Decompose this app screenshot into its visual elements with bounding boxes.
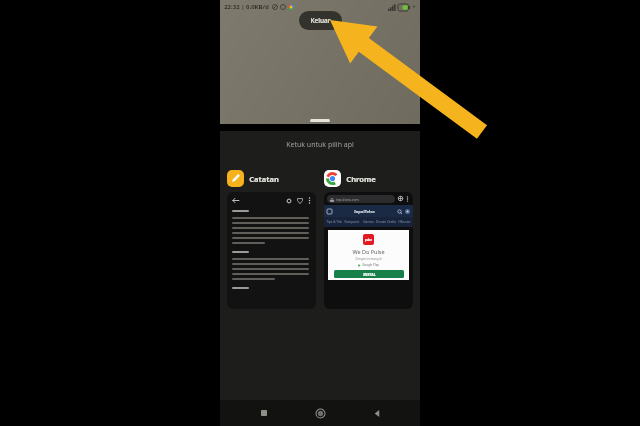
staticText: 22:32 | 0,0KB/d bbox=[224, 3, 269, 11]
staticText: Ketuk untuk pilih apl bbox=[286, 140, 354, 150]
staticText: INSTAL bbox=[363, 272, 376, 277]
staticText: Dengan memang di bbox=[355, 257, 382, 261]
staticText: + bbox=[412, 3, 416, 11]
staticText: Chrome bbox=[346, 174, 376, 184]
staticText: InpulTelco bbox=[354, 209, 375, 214]
staticText: We Do Pulse bbox=[352, 248, 385, 255]
button[interactable]: Chrome bbox=[324, 170, 413, 309]
staticText: pulse bbox=[365, 238, 372, 242]
staticText: Catatan bbox=[249, 174, 279, 184]
button[interactable]: Keluar bbox=[299, 11, 342, 30]
staticText: Keluar bbox=[310, 16, 331, 25]
button[interactable]: Catatan bbox=[227, 170, 316, 309]
staticText: Hiburan bbox=[398, 220, 411, 224]
button[interactable]: INSTAL bbox=[334, 270, 404, 278]
staticText: Tips & Trik bbox=[326, 220, 342, 224]
staticText: inpulsina.com bbox=[336, 197, 359, 202]
staticText: Games bbox=[363, 220, 374, 224]
staticText: Komputer bbox=[344, 220, 360, 224]
button[interactable]: Back bbox=[364, 400, 390, 426]
button[interactable]: Recent apps bbox=[251, 400, 277, 426]
staticText: Desain Grafis bbox=[376, 220, 396, 224]
staticText: Google Play bbox=[362, 263, 379, 267]
button[interactable]: Home bbox=[307, 400, 333, 426]
